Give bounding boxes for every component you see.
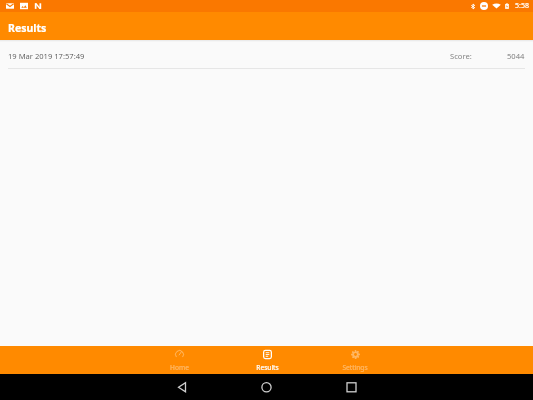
staticText: Results	[256, 363, 279, 372]
staticText: 5:58	[515, 1, 529, 11]
staticText: Score:	[450, 51, 472, 61]
staticText: 5044	[507, 51, 525, 61]
button[interactable]: Home	[135, 346, 223, 374]
button[interactable]: Back	[139, 374, 224, 400]
staticText: Settings	[342, 363, 368, 372]
staticText: Results	[8, 21, 47, 35]
button[interactable]: Settings	[311, 346, 399, 374]
button[interactable]: Results	[223, 346, 311, 374]
button[interactable]: Home	[224, 374, 309, 400]
staticText: 19 Mar 2019 17:57:49	[8, 51, 85, 61]
button[interactable]: Recent apps	[309, 374, 394, 400]
button[interactable]: 19 Mar 2019 17:57:49	[0, 40, 533, 69]
staticText: Home	[170, 363, 189, 372]
